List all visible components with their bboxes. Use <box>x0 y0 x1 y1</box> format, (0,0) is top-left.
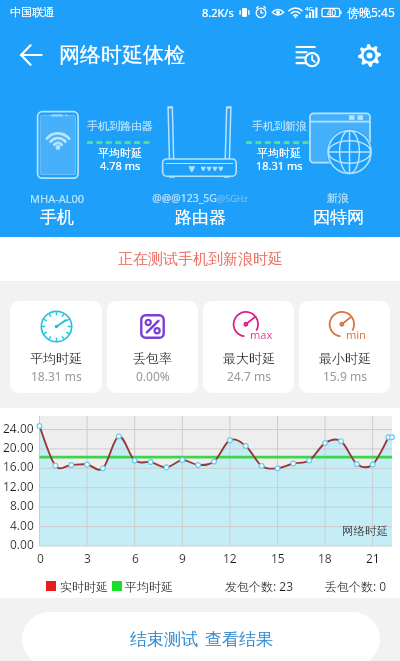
staticText: 0.00% <box>136 368 170 384</box>
staticText: 丢包率 <box>133 350 172 366</box>
staticText: 20.00 <box>3 439 34 455</box>
staticText: 最大时延 <box>223 350 275 366</box>
staticText: 手机到新浪 <box>252 119 307 133</box>
staticText: 40 <box>327 7 337 18</box>
staticText: 15.9 ms <box>323 368 367 384</box>
staticText: 查看结果 <box>205 629 273 650</box>
staticText: @@@123_5G@5GHz <box>152 191 248 205</box>
staticText: MHA-AL00 <box>30 191 85 206</box>
staticText: 3 <box>84 550 91 566</box>
staticText: 平均时延 <box>98 146 142 160</box>
staticText: 16.00 <box>3 458 34 474</box>
button[interactable]: 历史记录 <box>289 37 325 73</box>
staticText: 最小时延 <box>319 350 371 366</box>
staticText: 24.00 <box>3 420 34 436</box>
button[interactable]: max <box>203 301 294 393</box>
staticText: 平均时延 <box>125 579 173 594</box>
staticText: 21 <box>366 550 380 566</box>
staticText: 4G <box>305 5 313 13</box>
staticText: 手机到路由器 <box>87 119 153 133</box>
staticText: 18.31 ms <box>31 368 82 384</box>
staticText: 18 <box>318 550 332 566</box>
button[interactable]: 平均时延 <box>10 301 102 393</box>
staticText: 网络时延体检 <box>59 42 185 68</box>
button[interactable]: min <box>299 301 390 393</box>
staticText: 路由器 <box>175 207 226 228</box>
staticText: 新浪 <box>327 191 349 205</box>
staticText: 丢包个数: 0 <box>325 578 387 594</box>
staticText: 9 <box>179 550 186 566</box>
staticText: 平均时延 <box>30 350 82 366</box>
staticText: 0 <box>37 550 44 566</box>
button[interactable]: 设置 <box>351 37 387 73</box>
staticText: min <box>346 327 366 342</box>
staticText: 18.31 ms <box>256 158 303 173</box>
staticText: 15 <box>271 550 285 566</box>
staticText: 正在测试手机到新浪时延 <box>118 250 283 269</box>
staticText: 4.00 <box>10 517 34 533</box>
staticText: 网络时延 <box>342 524 388 538</box>
staticText: 8.2K/s <box>202 5 234 20</box>
staticText: 24.7 ms <box>227 368 271 384</box>
staticText: 手机 <box>40 207 74 228</box>
staticText: 12.00 <box>3 478 34 494</box>
staticText: 4.78 ms <box>100 158 141 173</box>
staticText: 发包个数: 23 <box>225 578 294 594</box>
staticText: 平均时延 <box>257 146 301 160</box>
button[interactable]: 结束测试 <box>22 612 380 661</box>
button[interactable]: 返回 <box>14 38 48 72</box>
staticText: 实时时延 <box>60 579 108 594</box>
staticText: 0.00 <box>10 536 34 552</box>
button[interactable]: 丢包率 <box>107 301 198 393</box>
staticText: 6 <box>132 550 139 566</box>
staticText: 傍晚5:45 <box>347 4 395 20</box>
staticText: 结束测试 <box>130 629 198 650</box>
staticText: 12 <box>223 550 237 566</box>
staticText: 中国联通 <box>10 5 54 19</box>
staticText: 8.00 <box>10 497 34 513</box>
staticText: max <box>250 327 273 342</box>
staticText: 因特网 <box>313 207 364 228</box>
